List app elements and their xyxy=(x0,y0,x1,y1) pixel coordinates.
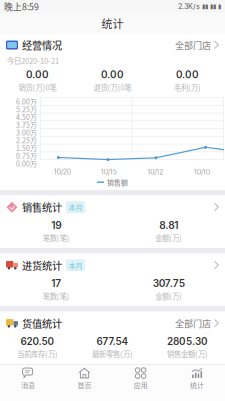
staticText: 销售统计 xyxy=(22,200,62,215)
staticText: 10/15 xyxy=(101,168,117,176)
staticText: 0.00 xyxy=(176,69,199,81)
staticText: ▮▮ ▮▮ ▮ xyxy=(202,3,221,10)
staticText: 0.00 xyxy=(26,69,49,81)
staticText: 0.75万 xyxy=(16,151,37,161)
button[interactable]: 进货统计 xyxy=(0,256,225,274)
staticText: 金额(万) xyxy=(155,290,182,301)
staticText: 0.00 xyxy=(101,69,124,81)
staticText: 10/20 xyxy=(54,168,71,176)
staticText: 307.75 xyxy=(153,277,185,290)
staticText: 3.00万 xyxy=(16,127,37,137)
staticText: 19 xyxy=(51,219,61,231)
button[interactable]: 首页 xyxy=(56,365,112,393)
staticText: 经营情况 xyxy=(22,38,62,52)
button[interactable]: 统计 xyxy=(169,365,225,393)
staticText: 8.81 xyxy=(159,219,178,231)
staticText: 笔数(笔) xyxy=(43,290,70,301)
staticText: 2.3K/s xyxy=(178,2,200,11)
staticText: 本月 xyxy=(68,260,82,270)
staticText: 4.50万 xyxy=(16,112,37,122)
staticText: 6.00万 xyxy=(16,96,37,106)
staticText: 10/12 xyxy=(147,168,163,176)
staticText: 17 xyxy=(51,277,61,290)
staticText: 货值统计 xyxy=(22,316,62,331)
staticText: 统计 xyxy=(101,16,123,31)
staticText: 10/10 xyxy=(194,168,210,176)
staticText: 笔数(笔) xyxy=(43,232,70,243)
staticText: 5.25万 xyxy=(16,104,37,114)
button[interactable]: 经营情况 xyxy=(0,36,225,54)
staticText: 当前库存(万) xyxy=(17,348,58,359)
staticText: 首页 xyxy=(77,380,91,390)
staticText: 最新零售(万) xyxy=(92,348,133,359)
staticText: 全部门店 xyxy=(175,317,211,330)
staticText: 消息 xyxy=(21,380,35,390)
staticText: 全部门店 xyxy=(175,38,211,51)
staticText: 1.50万 xyxy=(16,143,37,153)
staticText: 进货统计 xyxy=(22,258,62,273)
staticText: 晚上8:59 xyxy=(4,0,39,13)
staticText: 统计 xyxy=(190,380,204,390)
button[interactable]: 消息 xyxy=(0,365,56,393)
staticText: 0.00万 xyxy=(16,158,37,168)
staticText: 毛利(万) xyxy=(174,82,201,92)
staticText: 3.75万 xyxy=(16,120,37,130)
button[interactable]: 应用 xyxy=(112,365,169,393)
staticText: 今日2020-10-21 xyxy=(7,55,59,66)
staticText: 销售金额(万) xyxy=(167,348,208,359)
staticText: 销售额 xyxy=(107,177,128,187)
staticText: 销货(万)0笔 xyxy=(18,82,56,92)
staticText: 应用 xyxy=(134,380,148,390)
staticText: 620.50 xyxy=(20,335,54,347)
staticText: 金额(万) xyxy=(155,232,182,243)
staticText: 2.25万 xyxy=(16,135,37,145)
staticText: 本月 xyxy=(68,202,82,212)
staticText: 677.54 xyxy=(96,335,128,347)
staticText: 2805.30 xyxy=(167,335,208,347)
button[interactable]: 货值统计 xyxy=(0,314,225,332)
staticText: 退货(万)0笔 xyxy=(93,82,131,92)
button[interactable]: 销售统计 xyxy=(0,198,225,216)
